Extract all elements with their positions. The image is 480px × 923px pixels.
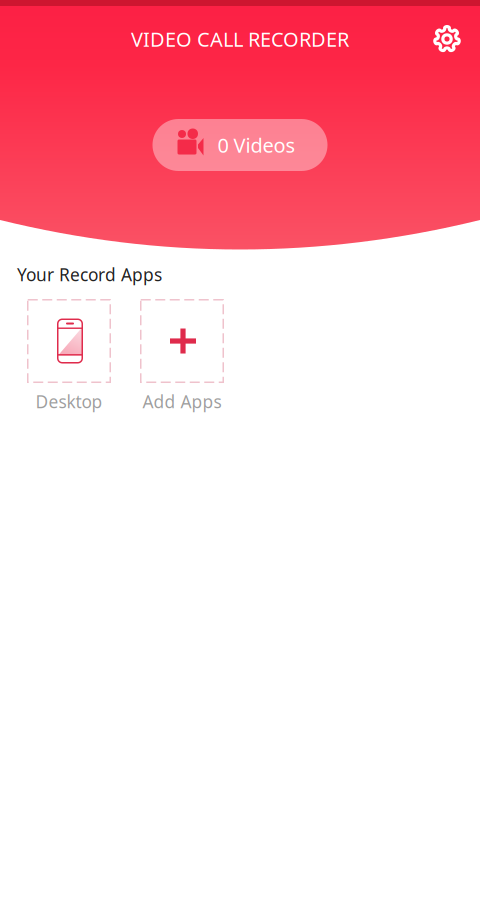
button[interactable]: Settings (425, 17, 469, 61)
staticText: Add Apps (142, 390, 221, 413)
button[interactable]: 0 Videos (152, 119, 327, 171)
button[interactable]: Desktop (27, 299, 111, 413)
button[interactable]: Add Apps (140, 299, 224, 413)
staticText: Your Record Apps (17, 263, 162, 286)
staticText: 0 Videos (217, 132, 295, 158)
staticText: VIDEO CALL RECORDER (131, 26, 349, 52)
staticText: Desktop (35, 390, 102, 413)
